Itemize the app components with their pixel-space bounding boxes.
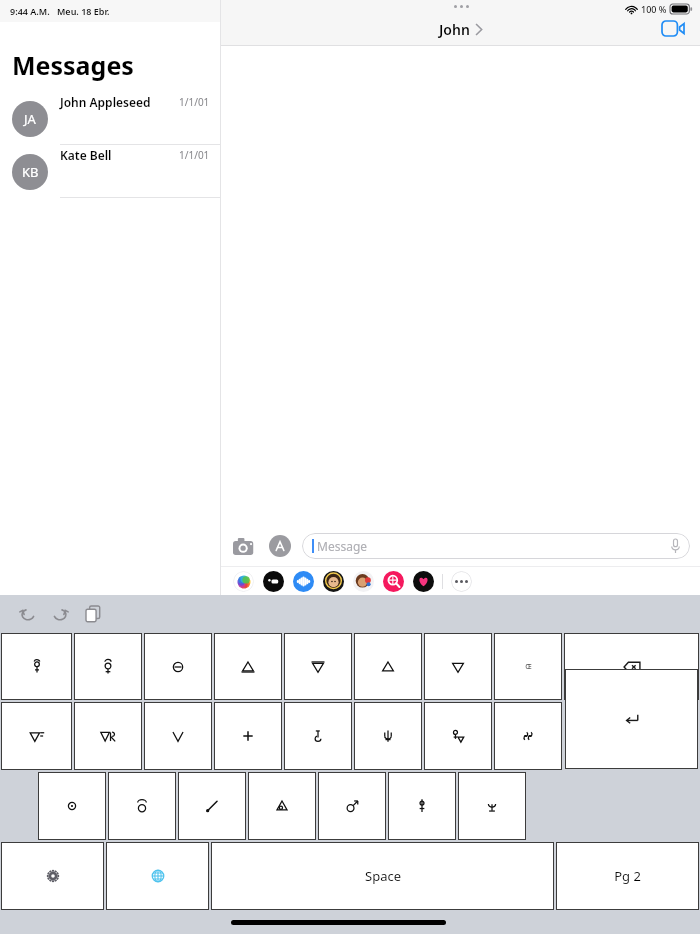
button[interactable]: Key	[144, 702, 212, 770]
button[interactable]: Key	[144, 633, 212, 700]
button[interactable]: Pg 2	[556, 842, 699, 910]
staticText: Space	[365, 867, 401, 885]
button[interactable]: Key	[424, 633, 492, 700]
button[interactable]: Space	[211, 842, 554, 910]
staticText: Messages	[12, 48, 134, 82]
staticText: John Appleseed	[60, 94, 151, 110]
button[interactable]: KB	[0, 145, 220, 198]
button[interactable]: More apps	[451, 571, 472, 592]
button[interactable]: Undo	[14, 601, 40, 627]
button[interactable]: Key	[494, 702, 562, 770]
staticText: Message	[317, 538, 368, 554]
button[interactable]: Key	[178, 772, 246, 840]
button[interactable]: Key	[74, 633, 142, 700]
button[interactable]: Apple Cash	[263, 571, 284, 592]
staticText: 100 %	[641, 3, 667, 15]
button[interactable]: FaceTime video call	[660, 15, 686, 41]
button[interactable]: Multitasking options	[446, 5, 476, 8]
button[interactable]: Message	[302, 533, 690, 559]
button[interactable]: Stickers	[353, 571, 374, 592]
button[interactable]: Key	[106, 842, 209, 910]
button[interactable]: John	[439, 20, 482, 39]
button[interactable]: Key	[1, 633, 72, 700]
button[interactable]: Memoji	[323, 571, 344, 592]
button[interactable]: Key	[1, 702, 72, 770]
button[interactable]: Paste	[80, 601, 106, 627]
button[interactable]: Key	[354, 702, 422, 770]
button[interactable]: Photos	[233, 571, 254, 592]
button[interactable]: JA	[0, 92, 220, 145]
button[interactable]: Key	[354, 633, 422, 700]
button[interactable]: App Store	[267, 533, 293, 559]
button[interactable]: Key	[424, 702, 492, 770]
staticText: 9:44 A.M.	[10, 5, 50, 17]
button[interactable]: Key	[108, 772, 176, 840]
button[interactable]: Key	[214, 702, 282, 770]
button[interactable]: Key	[284, 702, 352, 770]
staticText: Meu. 18 Ebr.	[57, 5, 110, 17]
button[interactable]: Audio message	[293, 571, 314, 592]
button[interactable]: Key	[565, 669, 698, 769]
button[interactable]: Key	[1, 842, 104, 910]
button[interactable]: Key	[74, 702, 142, 770]
staticText: 1/1/01	[179, 148, 210, 162]
button[interactable]: Key	[458, 772, 526, 840]
button[interactable]: Key	[284, 633, 352, 700]
staticText: Kate Bell	[60, 147, 112, 163]
button[interactable]: Images search	[383, 571, 404, 592]
staticText: Œ	[525, 662, 532, 672]
button[interactable]: Key	[38, 772, 106, 840]
button[interactable]: Camera	[231, 533, 257, 559]
button[interactable]: Digital Touch	[413, 571, 434, 592]
staticText: Pg 2	[614, 867, 641, 885]
button[interactable]: Redo	[47, 601, 73, 627]
staticText: JA	[24, 110, 36, 128]
button[interactable]: Key	[388, 772, 456, 840]
button[interactable]: Key	[318, 772, 386, 840]
staticText: KB	[22, 163, 39, 181]
staticText: 1/1/01	[179, 95, 210, 109]
button[interactable]: Key	[214, 633, 282, 700]
button[interactable]: Key	[564, 633, 699, 700]
button[interactable]: Œ	[494, 633, 562, 700]
staticText: John	[439, 20, 470, 39]
button[interactable]: Key	[248, 772, 316, 840]
